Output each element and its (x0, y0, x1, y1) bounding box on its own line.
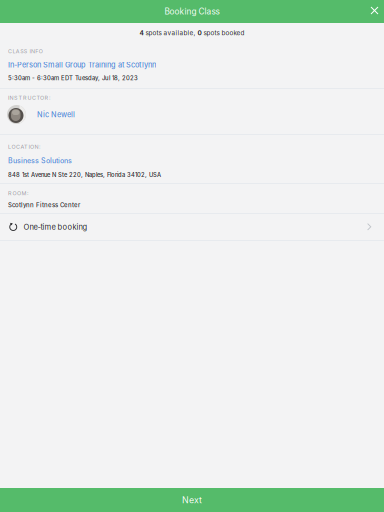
staticText: 848 1st Avenue N Ste 220, Naples, Florid… (8, 171, 161, 178)
staticText: 5:30am - 6:30am EDT Tuesday, Jul 18, 202… (8, 74, 138, 82)
staticText: Nic Newell (37, 110, 75, 119)
staticText: Business Solutions (8, 156, 72, 165)
button[interactable]: Nic Newell (7, 105, 75, 124)
button[interactable]: In-Person Small Group Training at Scotly… (8, 58, 156, 71)
button[interactable]: Business Solutions (8, 154, 72, 167)
staticText: One-time booking (23, 222, 87, 232)
staticText: CLASS INFO (8, 48, 43, 54)
staticText: Scotlynn Fitness Center (8, 201, 80, 209)
staticText: 4 spots available, 0 spots booked (139, 29, 244, 37)
staticText: ROOM: (8, 190, 29, 197)
button[interactable]: One-time booking (0, 214, 384, 240)
staticText: LOCATION: (8, 143, 41, 150)
staticText: Next (182, 495, 202, 505)
button[interactable]: Next (0, 488, 384, 512)
staticText: In-Person Small Group Training at Scotly… (8, 60, 156, 69)
button[interactable]: Close (365, 0, 384, 20)
staticText: INSTRUCTOR: (8, 94, 51, 101)
staticText: Booking Class (164, 6, 219, 16)
